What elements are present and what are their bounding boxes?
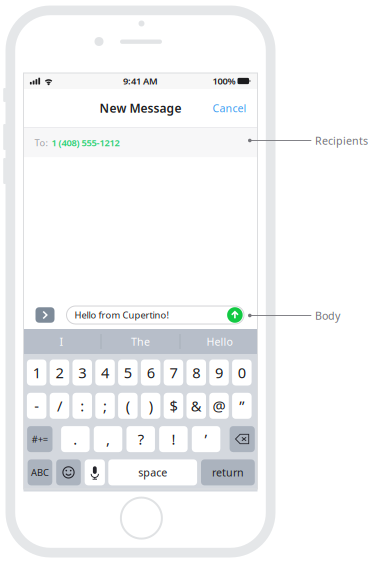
staticText: Body [315, 308, 340, 323]
staticText: ? [138, 429, 144, 449]
staticText: ! [171, 429, 175, 449]
staticText: / [57, 396, 62, 416]
staticText: return [212, 465, 244, 479]
button[interactable]: #+= [27, 426, 52, 452]
staticText: Hello from Cupertino! [74, 309, 169, 321]
staticText: Hello [206, 334, 232, 349]
button[interactable]: ’ [192, 426, 220, 452]
button[interactable]: ; [95, 393, 115, 419]
button[interactable]: 5 [118, 359, 138, 385]
button[interactable]: ” [232, 393, 252, 419]
staticText: #+= [32, 433, 48, 445]
button[interactable]: Emoji [56, 459, 81, 485]
button[interactable]: The [101, 329, 179, 354]
staticText: 7 [169, 363, 177, 382]
staticText: 4 [101, 363, 109, 382]
staticText: : [80, 396, 84, 416]
staticText: 1 [33, 363, 41, 382]
button[interactable]: / [50, 393, 69, 419]
staticText: space [138, 465, 167, 479]
staticText: To: [34, 136, 48, 149]
staticText: 9:41 AM [123, 75, 158, 87]
staticText: 3 [78, 363, 86, 382]
staticText: I [59, 334, 63, 349]
button[interactable]: Hello [180, 329, 258, 354]
staticText: 8 [192, 363, 200, 382]
staticText: ( [126, 396, 130, 416]
button[interactable]: @ [209, 393, 229, 419]
staticText: Cancel [212, 101, 246, 115]
button[interactable]: Dictation [85, 459, 105, 485]
staticText: ABC [31, 466, 49, 479]
staticText: & [191, 396, 202, 416]
button[interactable]: 3 [72, 359, 92, 385]
staticText: @ [213, 396, 226, 416]
button[interactable]: 0 [232, 359, 252, 385]
staticText: ’ [205, 429, 208, 449]
staticText: 5 [124, 363, 132, 382]
button[interactable]: Send [227, 307, 243, 323]
button[interactable]: 8 [186, 359, 206, 385]
button[interactable]: . [61, 426, 90, 452]
staticText: 0 [238, 363, 246, 382]
button[interactable]: ? [126, 426, 155, 452]
button[interactable]: return [201, 459, 255, 485]
staticText: New Message [99, 100, 181, 116]
button[interactable]: , [94, 426, 122, 452]
button[interactable]: & [186, 393, 206, 419]
button[interactable]: ( [118, 393, 138, 419]
button[interactable]: Delete [230, 426, 255, 452]
staticText: - [34, 396, 39, 416]
button[interactable]: 2 [50, 359, 69, 385]
staticText: , [106, 429, 110, 449]
staticText: Recipients [315, 133, 368, 148]
button[interactable]: ) [141, 393, 160, 419]
staticText: 9 [215, 363, 223, 382]
button[interactable]: ABC [28, 459, 52, 485]
staticText: 100% [212, 75, 235, 87]
staticText: The [131, 334, 150, 349]
button[interactable]: 7 [164, 359, 183, 385]
button[interactable]: : [72, 393, 92, 419]
button[interactable]: 4 [95, 359, 115, 385]
button[interactable]: 1 [27, 359, 46, 385]
button[interactable]: - [27, 393, 46, 419]
button[interactable]: 6 [141, 359, 160, 385]
staticText: ” [239, 396, 244, 416]
staticText: 6 [147, 363, 155, 382]
button[interactable]: To: [23, 128, 257, 157]
staticText: 2 [55, 363, 63, 382]
staticText: $ [169, 396, 177, 416]
staticText: ) [149, 396, 153, 416]
staticText: 1 (408) 555-1212 [51, 136, 119, 149]
button[interactable]: space [108, 459, 197, 485]
button[interactable]: I [22, 329, 100, 354]
staticText: ; [103, 396, 107, 416]
button[interactable]: More options [35, 307, 54, 323]
button[interactable]: Cancel [207, 96, 251, 120]
staticText: . [73, 429, 77, 449]
button[interactable]: 9 [209, 359, 229, 385]
button[interactable]: $ [164, 393, 183, 419]
button[interactable]: ! [159, 426, 188, 452]
